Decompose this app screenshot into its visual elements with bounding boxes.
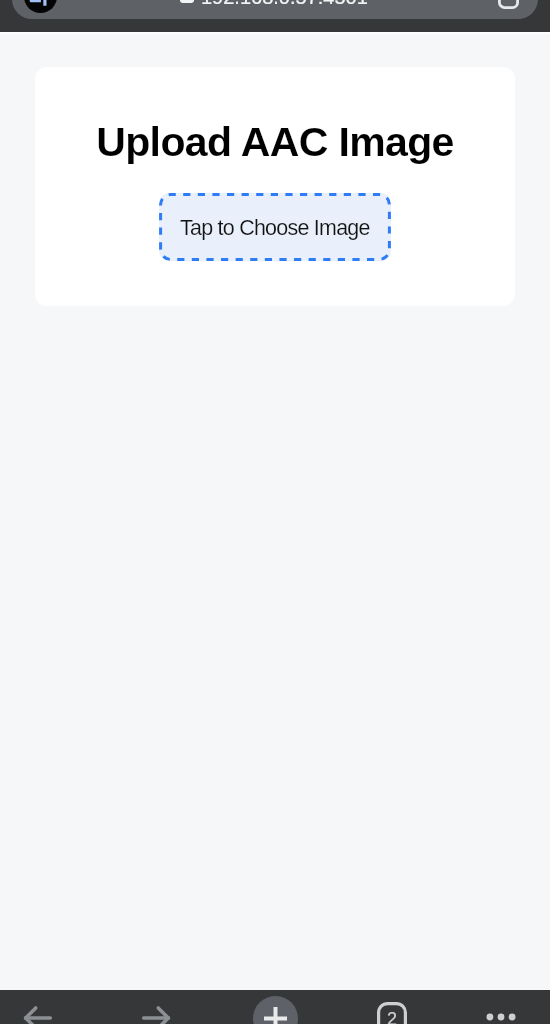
button[interactable]: Page actions [498, 0, 519, 9]
button[interactable]: Tap to Choose Image [159, 193, 391, 261]
button[interactable]: Forward [129, 991, 183, 1024]
button[interactable]: Account [24, 0, 57, 13]
button[interactable]: More options [474, 991, 528, 1024]
button[interactable] [12, 0, 538, 19]
staticText: 192.168.0.57:4501 [201, 0, 368, 8]
staticText: Tap to Choose Image [180, 216, 370, 240]
button[interactable]: New tab [248, 991, 302, 1024]
button[interactable]: Tabs [365, 991, 419, 1024]
button[interactable]: Back [11, 991, 65, 1024]
staticText: 2 [387, 1009, 398, 1024]
staticText: Upload AAC Image [35, 119, 515, 165]
